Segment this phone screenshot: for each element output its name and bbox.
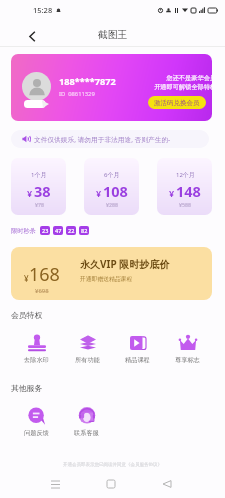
button[interactable]: Recents [43, 472, 67, 496]
staticText: ¥ [169, 187, 175, 199]
staticText: 1个月 [31, 171, 47, 179]
button[interactable]: 精品课程 [112, 333, 162, 364]
button[interactable]: 12个月 [157, 158, 212, 215]
staticText: 15:28 [33, 5, 53, 15]
staticText: 联系客服 [74, 429, 99, 437]
staticText: 您还不是豪华会员 [137, 74, 212, 82]
button[interactable]: 问题反馈 [11, 406, 61, 437]
button[interactable]: 6个月 [84, 158, 139, 215]
staticText: 168 [29, 262, 60, 287]
staticText: 激活码兑换会员 [154, 99, 200, 107]
button[interactable]: Back [155, 472, 179, 496]
button[interactable]: 文件仅供娱乐, 请勿用于非法用途, 否则产生的- [11, 130, 209, 148]
staticText: ¥588 [179, 201, 191, 208]
staticText: 82 [81, 227, 88, 234]
staticText: ID 08611329 [59, 90, 95, 98]
staticText: 23 [42, 227, 49, 234]
staticText: 开通即可解锁全部特权 [137, 83, 212, 91]
button[interactable]: 188****7872 [11, 54, 212, 121]
staticText: 精品课程 [125, 356, 150, 364]
button[interactable]: 所有功能 [62, 333, 112, 364]
staticText: 去除水印 [24, 356, 49, 364]
staticText: ¥ [24, 273, 29, 284]
staticText: 尊享标志 [175, 356, 200, 364]
staticText: ¥288 [106, 201, 118, 208]
staticText: 开通即赠送精品课程 [80, 275, 133, 282]
button[interactable]: 尊享标志 [162, 333, 212, 364]
staticText: 108 [103, 181, 128, 201]
staticText: 188****7872 [59, 75, 116, 88]
staticText: ¥78 [35, 201, 44, 208]
button[interactable]: 1个月 [11, 158, 66, 215]
staticText: 开通会员即表示您已阅读并同意《会员服务协议》 [0, 462, 225, 468]
staticText: ¥698 [35, 287, 49, 295]
button[interactable]: ¥ [11, 247, 212, 300]
staticText: 会员特权 [11, 310, 43, 320]
staticText: 文件仅供娱乐, 请勿用于非法用途, 否则产生的- [34, 135, 171, 144]
staticText: 问题反馈 [24, 429, 49, 437]
staticText: 截图王 [98, 29, 128, 41]
staticText: ¥ [96, 187, 102, 199]
staticText: 38 [34, 181, 51, 201]
staticText: ¥ [27, 187, 33, 199]
button[interactable]: Home [99, 472, 123, 496]
staticText: 47 [55, 227, 62, 234]
staticText: 限时秒杀 [11, 227, 36, 235]
staticText: 永久VIP 限时抄底价 [80, 257, 170, 271]
staticText: 其他服务 [11, 383, 43, 393]
button[interactable]: 联系客服 [61, 406, 111, 437]
staticText: 148 [176, 181, 201, 201]
button[interactable]: 去除水印 [11, 333, 62, 364]
button[interactable]: 激活码兑换会员 [148, 96, 206, 109]
staticText: 22 [68, 227, 75, 234]
staticText: 12个月 [176, 171, 195, 179]
staticText: 6个月 [104, 171, 120, 179]
button[interactable]: Back [19, 23, 45, 49]
staticText: 所有功能 [75, 356, 100, 364]
